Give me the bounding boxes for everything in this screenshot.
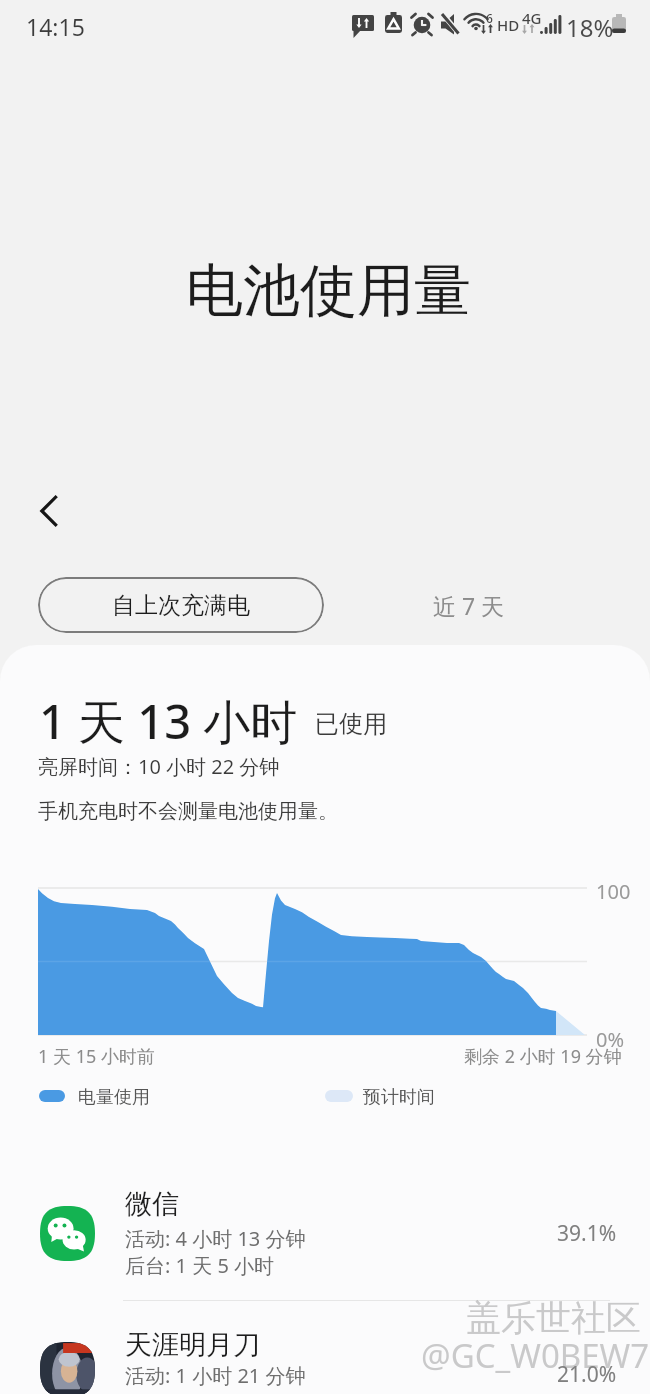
staticText: 盖乐世社区 [466,1296,641,1340]
staticText: 电量使用 [78,1086,150,1109]
button[interactable]: 自上次充满电 [38,577,324,633]
staticText: 21.0% [557,1360,617,1389]
staticText: 近 7 天 [433,590,505,621]
staticText: 活动: 4 小时 13 分钟 [125,1225,306,1252]
staticText: 剩余 2 小时 19 分钟 [464,1044,622,1069]
staticText: 100 [596,878,631,905]
button[interactable]: 微信 [0,1172,650,1305]
staticText: HD [497,15,520,35]
staticText: 6 [486,10,493,26]
staticText: 1 天 15 小时前 [38,1044,155,1069]
staticText: 亮屏时间：10 小时 22 分钟 [38,753,280,780]
staticText: 已使用 [315,709,387,739]
button[interactable]: Back [25,487,73,535]
staticText: 预计时间 [363,1086,435,1109]
staticText: 39.1% [557,1219,617,1248]
staticText: 4G [522,8,542,28]
staticText: 微信 [125,1187,179,1221]
staticText: 手机充电时不会测量电池使用量。 [38,799,338,824]
staticText: 电池使用量 [186,255,471,327]
staticText: 18% [566,11,614,44]
staticText: 自上次充满电 [112,591,250,620]
staticText: 活动: 1 小时 21 分钟 [125,1362,306,1389]
staticText: @GC_W0BEW7I [421,1333,650,1378]
button[interactable]: 近 7 天 [344,577,594,633]
staticText: 1 天 13 小时 [39,689,298,753]
button[interactable]: 天涯明月刀 [0,1306,650,1394]
staticText: 14:15 [26,11,85,42]
staticText: 0% [596,1026,625,1053]
staticText: 后台: 1 天 5 小时 [125,1252,275,1279]
staticText: 天涯明月刀 [125,1328,260,1362]
